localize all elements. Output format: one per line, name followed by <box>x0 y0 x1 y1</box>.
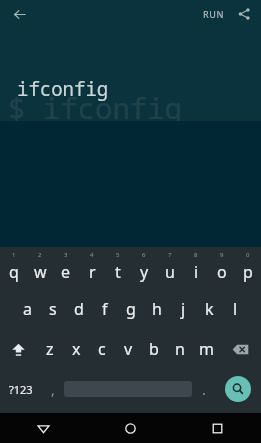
button[interactable]: 7 <box>157 249 183 289</box>
button[interactable]: Backspace <box>219 329 261 369</box>
button[interactable]: v <box>115 329 141 369</box>
staticText: h <box>152 298 162 320</box>
button[interactable]: 3 <box>53 249 79 289</box>
button[interactable]: g <box>118 289 144 329</box>
button[interactable]: m <box>193 329 219 369</box>
staticText: r <box>89 261 96 283</box>
staticText: g <box>126 298 136 320</box>
staticText: d <box>74 298 84 320</box>
staticText: t <box>115 261 121 283</box>
staticText: p <box>243 261 253 283</box>
staticText: o <box>217 261 227 283</box>
staticText: 0 <box>246 251 250 259</box>
button[interactable]: 5 <box>105 249 131 289</box>
button[interactable]: Share <box>231 1 257 27</box>
staticText: j <box>181 298 186 320</box>
staticText: 2 <box>38 251 42 259</box>
staticText: x <box>72 338 81 360</box>
staticText: 5 <box>116 251 120 259</box>
button[interactable]: Home <box>87 413 174 443</box>
button[interactable]: RUN <box>197 4 231 24</box>
staticText: u <box>165 261 175 283</box>
button[interactable]: l <box>222 289 248 329</box>
button[interactable]: Back <box>0 413 87 443</box>
staticText: f <box>102 298 108 320</box>
button[interactable]: . <box>192 369 215 409</box>
staticText: c <box>98 338 106 360</box>
staticText: l <box>233 298 238 320</box>
button[interactable]: 9 <box>209 249 235 289</box>
staticText: m <box>199 338 214 360</box>
button[interactable]: Back <box>6 1 32 27</box>
button[interactable]: n <box>167 329 193 369</box>
button[interactable]: j <box>170 289 196 329</box>
staticText: 8 <box>194 251 198 259</box>
staticText: 7 <box>168 251 172 259</box>
staticText: k <box>205 298 214 320</box>
staticText: , <box>51 380 55 399</box>
staticText: i <box>194 261 199 283</box>
staticText: 4 <box>90 251 94 259</box>
staticText: a <box>23 298 32 320</box>
staticText: ifconfig <box>17 76 109 102</box>
staticText: n <box>175 338 185 360</box>
button[interactable]: s <box>40 289 66 329</box>
button[interactable]: 4 <box>79 249 105 289</box>
button[interactable]: h <box>144 289 170 329</box>
button[interactable]: b <box>141 329 167 369</box>
button[interactable]: Shift <box>0 329 37 369</box>
button[interactable]: 8 <box>183 249 209 289</box>
staticText: 1 <box>12 251 16 259</box>
staticText: ?123 <box>9 382 33 397</box>
staticText: b <box>149 338 159 360</box>
staticText: . <box>202 380 206 399</box>
staticText: e <box>61 261 71 283</box>
staticText: q <box>9 261 19 283</box>
staticText: $ ifconfig <box>8 88 183 127</box>
staticText: s <box>49 298 57 320</box>
staticText: y <box>140 261 149 283</box>
button[interactable]: z <box>37 329 63 369</box>
button[interactable]: 1 <box>0 249 27 289</box>
button[interactable]: Search <box>225 376 251 402</box>
button[interactable]: Recents <box>174 413 261 443</box>
button[interactable]: x <box>63 329 89 369</box>
button[interactable]: 0 <box>235 249 261 289</box>
button[interactable]: a <box>14 289 40 329</box>
button[interactable]: d <box>66 289 92 329</box>
button[interactable]: c <box>89 329 115 369</box>
staticText: 6 <box>142 251 146 259</box>
button[interactable]: k <box>196 289 222 329</box>
staticText: z <box>46 338 54 360</box>
staticText: 3 <box>64 251 68 259</box>
button[interactable]: f <box>92 289 118 329</box>
staticText: v <box>124 338 133 360</box>
button[interactable]: ?123 <box>0 369 41 409</box>
button[interactable]: 2 <box>27 249 53 289</box>
staticText: w <box>34 261 47 283</box>
staticText: 9 <box>220 251 224 259</box>
button[interactable]: , <box>41 369 64 409</box>
staticText: RUN <box>203 8 225 20</box>
button[interactable]: 6 <box>131 249 157 289</box>
